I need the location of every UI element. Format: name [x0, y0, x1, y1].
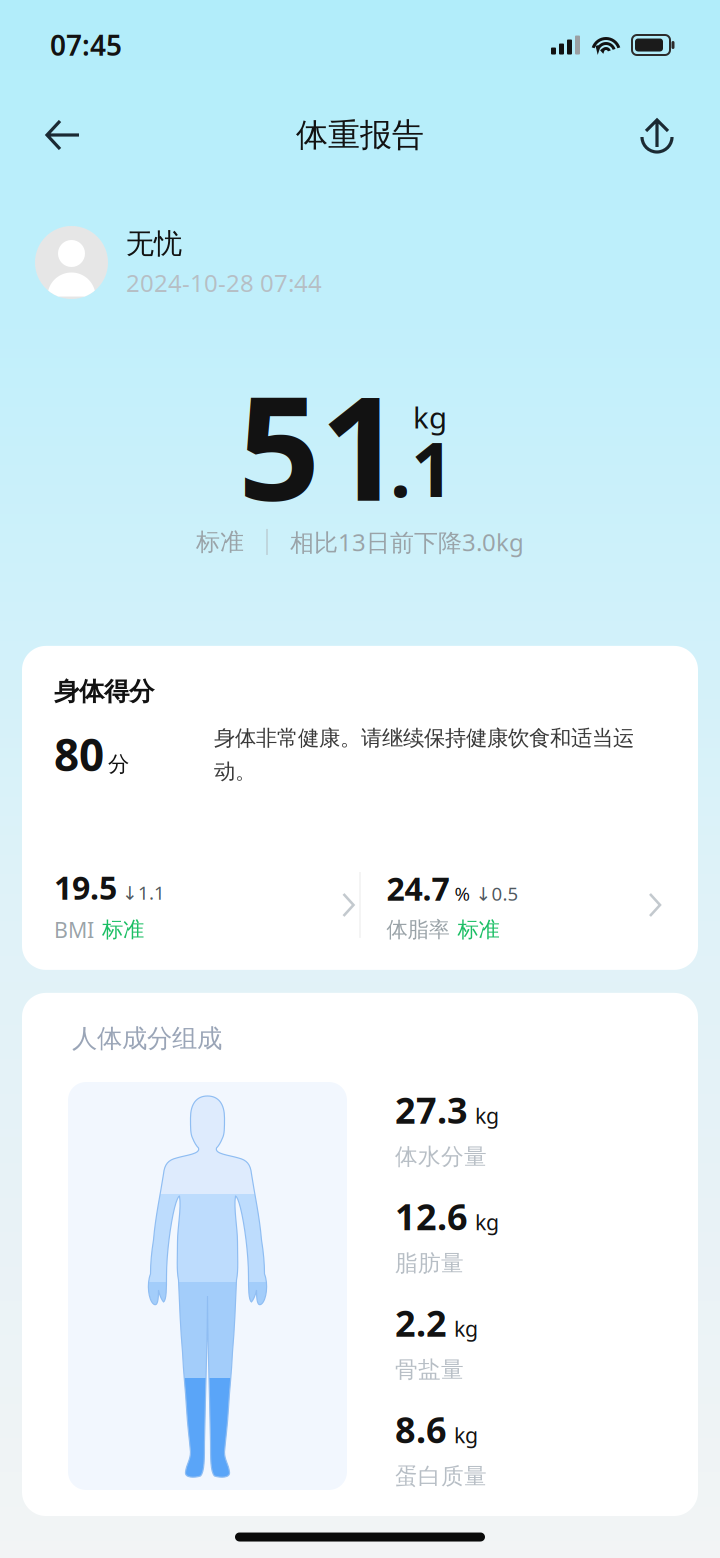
staticText: 体脂率: [386, 917, 449, 943]
staticText: 标准: [102, 917, 144, 943]
button[interactable]: Back: [28, 100, 98, 170]
staticText: 07:45: [50, 26, 122, 64]
staticText: 人体成分组成: [72, 1023, 222, 1054]
staticText: 分: [108, 751, 129, 777]
staticText: 80: [54, 725, 104, 783]
staticText: 脂肪量: [395, 1249, 464, 1277]
button[interactable]: Share: [622, 100, 692, 170]
staticText: 12.6: [395, 1192, 468, 1240]
staticText: 身体得分: [54, 676, 154, 707]
staticText: %: [454, 881, 470, 906]
staticText: 身体非常健康。请继续保持健康饮食和适当运动。: [214, 725, 634, 784]
staticText: kg: [413, 397, 447, 436]
staticText: 无忧: [126, 226, 182, 261]
staticText: ↓1.1: [122, 880, 165, 905]
staticText: 19.5: [54, 866, 117, 909]
staticText: ↓0.5: [475, 881, 518, 906]
staticText: 2024-10-28 07:44: [126, 267, 322, 299]
staticText: 相比13日前下降3.0kg: [290, 526, 524, 558]
staticText: kg: [475, 1101, 499, 1130]
staticText: 24.7: [386, 867, 449, 910]
staticText: kg: [475, 1208, 499, 1236]
staticText: 标准: [457, 917, 499, 943]
staticText: 体水分量: [395, 1143, 487, 1171]
staticText: 骨盐量: [395, 1356, 464, 1383]
staticText: 标准: [196, 527, 244, 557]
staticText: BMI: [54, 916, 94, 944]
staticText: 51: [238, 349, 402, 541]
staticText: kg: [454, 1421, 478, 1449]
staticText: .1: [390, 418, 454, 518]
staticText: 27.3: [395, 1086, 468, 1134]
staticText: 2.2: [395, 1299, 447, 1347]
staticText: 蛋白质量: [395, 1462, 487, 1490]
staticText: 体重报告: [296, 115, 424, 155]
staticText: 8.6: [395, 1405, 447, 1453]
button[interactable]: 19.5: [54, 866, 359, 944]
staticText: kg: [454, 1314, 478, 1343]
button[interactable]: 24.7: [360, 867, 666, 943]
